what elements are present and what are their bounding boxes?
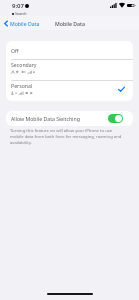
staticText: Mobile Data: [55, 20, 85, 27]
staticText: Mobile Data: [10, 20, 40, 27]
staticText: Allow Mobile Data Switching: [11, 115, 80, 122]
staticText: Turning this feature on will allow your …: [10, 128, 125, 146]
button[interactable]: Mobile Data: [4, 20, 40, 27]
staticText: Search: [15, 11, 27, 16]
button[interactable]: Off: [6, 41, 133, 59]
staticText: Secondary: [11, 61, 37, 68]
staticText: Personal: [11, 82, 33, 89]
button[interactable]: Secondary: [6, 60, 133, 80]
button[interactable]: Allow Mobile Data Switching toggle: [108, 114, 123, 123]
staticText: Off: [11, 47, 19, 54]
button[interactable]: Allow Mobile Data Switching: [6, 111, 133, 126]
staticText: 9:07: [12, 2, 24, 10]
button[interactable]: Personal: [6, 81, 133, 101]
